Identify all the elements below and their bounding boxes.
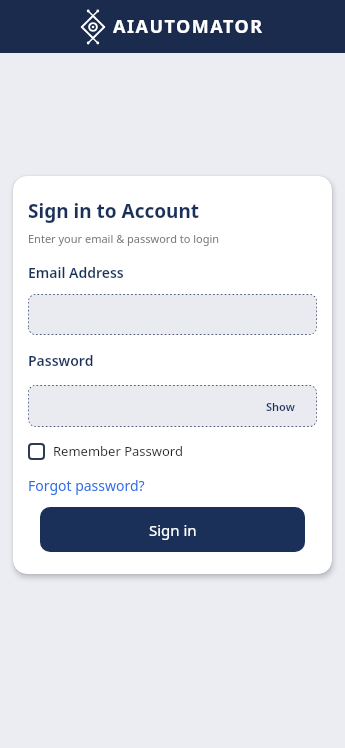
staticText: AIAUTOMATOR <box>113 14 264 39</box>
staticText: Remember Password <box>53 442 183 460</box>
button[interactable]: Show <box>266 399 295 414</box>
staticText: Sign in <box>149 520 197 540</box>
button[interactable]: Forgot password? <box>28 476 145 495</box>
button[interactable]: Remember Password <box>28 442 183 460</box>
button[interactable]: Sign in <box>40 507 305 552</box>
staticText: Password <box>28 351 94 370</box>
staticText: Enter your email & password to login <box>28 231 220 246</box>
button[interactable]: Show <box>28 385 317 427</box>
button[interactable] <box>28 294 317 335</box>
staticText: Email Address <box>28 263 124 282</box>
staticText: Sign in to Account <box>28 198 200 224</box>
